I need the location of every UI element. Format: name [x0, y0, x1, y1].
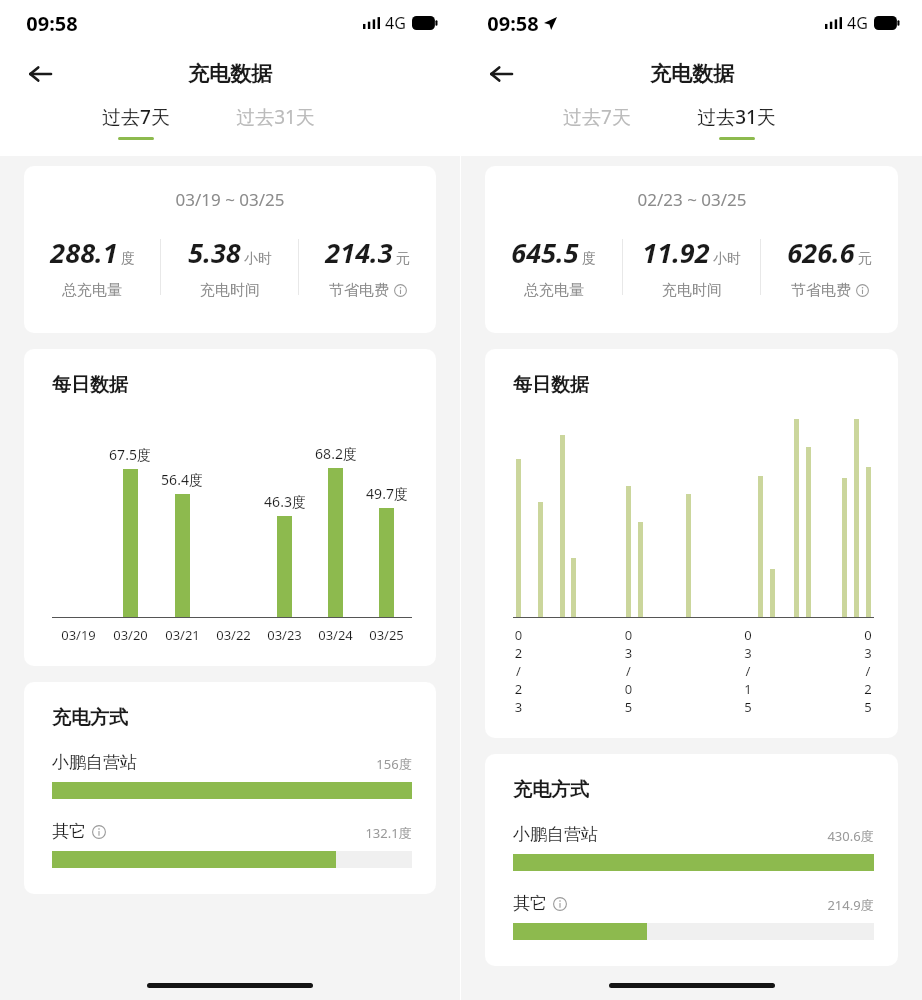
staticText: 节省电费: [329, 281, 389, 300]
button[interactable]: Back: [18, 52, 62, 96]
staticText: 09:58: [26, 10, 78, 37]
staticText: 03/25: [862, 626, 874, 716]
staticText: 430.6度: [827, 827, 874, 845]
staticText: 03/20: [113, 626, 148, 644]
staticText: 03/19 ~ 03/25: [175, 188, 285, 211]
staticText: 4G: [847, 12, 868, 34]
staticText: 03/23: [267, 626, 302, 644]
staticText: 03/19: [61, 626, 96, 644]
staticText: 03/25: [369, 626, 404, 644]
staticText: 小时: [713, 250, 741, 268]
staticText: 充电方式: [52, 706, 128, 730]
staticText: 03/22: [216, 626, 251, 644]
staticText: 03/24: [318, 626, 353, 644]
staticText: 4G: [385, 12, 406, 34]
button[interactable]: 过去31天: [691, 102, 782, 142]
staticText: 过去7天: [563, 104, 631, 130]
staticText: 626.6: [787, 234, 855, 271]
staticText: 214.9度: [827, 896, 874, 914]
button[interactable]: 过去7天: [557, 102, 637, 142]
staticText: 每日数据: [513, 373, 589, 397]
staticText: 度: [121, 250, 135, 268]
staticText: 总充电量: [524, 281, 584, 300]
staticText: 充电方式: [513, 778, 589, 802]
staticText: 03/05: [623, 626, 634, 716]
staticText: 645.5: [511, 234, 579, 271]
staticText: 68.2度: [315, 444, 357, 463]
staticText: 46.3度: [264, 492, 306, 511]
staticText: 09:58: [487, 10, 539, 37]
button[interactable]: Info: [553, 897, 567, 911]
staticText: 56.4度: [161, 470, 203, 489]
staticText: 小鹏自营站: [52, 752, 137, 773]
staticText: 过去31天: [697, 104, 776, 130]
staticText: 02/23: [513, 626, 524, 716]
staticText: 03/15: [742, 626, 754, 716]
staticText: 67.5度: [109, 445, 151, 464]
staticText: 132.1度: [365, 824, 412, 842]
staticText: 214.3: [325, 234, 393, 271]
staticText: 过去7天: [102, 104, 170, 130]
staticText: 总充电量: [62, 281, 122, 300]
button[interactable]: 过去31天: [230, 102, 321, 142]
staticText: 156度: [376, 755, 412, 773]
staticText: 度: [582, 250, 596, 268]
button[interactable]: 过去7天: [96, 102, 176, 142]
button[interactable]: Back: [479, 52, 523, 96]
staticText: 充电数据: [650, 61, 734, 87]
staticText: 充电时间: [662, 281, 722, 300]
staticText: 小鹏自营站: [513, 824, 598, 845]
button[interactable]: Info: [92, 825, 106, 839]
staticText: 11.92: [642, 234, 710, 271]
staticText: 充电时间: [200, 281, 260, 300]
staticText: 03/21: [165, 626, 200, 644]
staticText: 5.38: [188, 234, 241, 271]
staticText: 每日数据: [52, 373, 128, 397]
staticText: 其它: [52, 821, 86, 842]
staticText: 节省电费: [791, 281, 851, 300]
staticText: 充电数据: [188, 61, 272, 87]
staticText: 过去31天: [236, 104, 315, 130]
staticText: 49.7度: [366, 484, 408, 503]
staticText: 288.1: [50, 234, 118, 271]
staticText: 元: [858, 250, 872, 268]
staticText: 其它: [513, 893, 547, 914]
staticText: 小时: [244, 250, 272, 268]
staticText: 02/23 ~ 03/25: [637, 188, 747, 211]
staticText: 元: [396, 250, 410, 268]
